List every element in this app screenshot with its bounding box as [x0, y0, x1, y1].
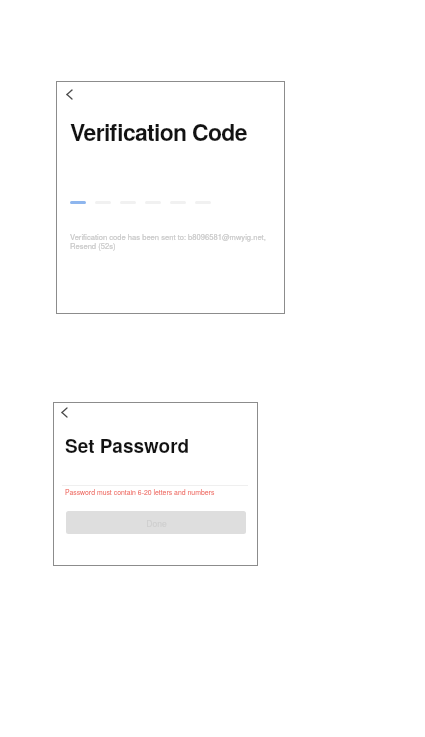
- staticText: Done: [146, 517, 167, 529]
- staticText: Password must contain 6-20 letters and n…: [65, 487, 215, 497]
- staticText: Verification code has been sent to: b809…: [70, 231, 266, 252]
- staticText: Verification Code: [70, 115, 247, 148]
- button[interactable]: Back: [54, 402, 75, 423]
- button[interactable]: [70, 201, 86, 204]
- button[interactable]: Back: [59, 84, 80, 105]
- staticText: Set Password: [65, 432, 190, 459]
